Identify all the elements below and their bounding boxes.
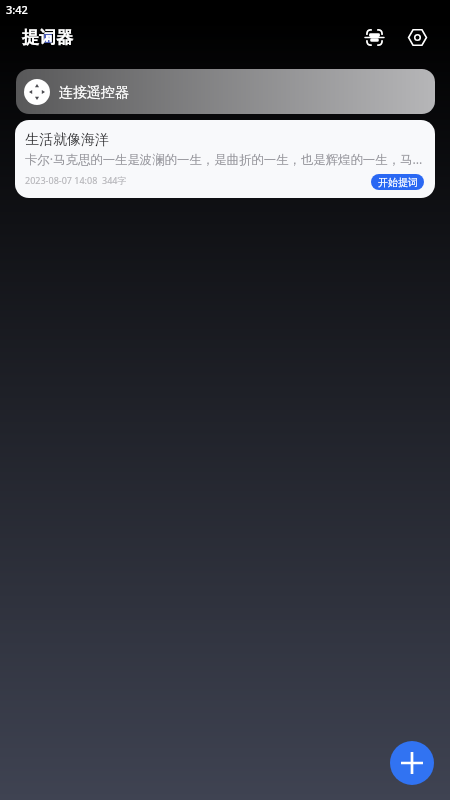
staticText: 卡尔·马克思的一生是波澜的一生，是曲折的一生，也是辉煌的一生，马… bbox=[25, 151, 427, 168]
button[interactable]: 设置 bbox=[402, 22, 432, 52]
staticText: 提词器 bbox=[22, 27, 73, 48]
button[interactable]: 连接遥控器 bbox=[16, 69, 435, 114]
staticText: 2023-08-07 14:08 344字 bbox=[25, 174, 127, 186]
button[interactable]: 扫描 bbox=[358, 22, 388, 52]
staticText: 生活就像海洋 bbox=[25, 131, 109, 149]
staticText: 连接遥控器 bbox=[59, 84, 129, 102]
staticText: 开始提词 bbox=[378, 176, 418, 189]
staticText: 3:42 bbox=[6, 2, 28, 17]
button[interactable]: 开始提词 bbox=[371, 174, 424, 190]
button[interactable]: 新建提词 bbox=[390, 741, 434, 785]
button[interactable]: 生活就像海洋 bbox=[15, 120, 435, 198]
